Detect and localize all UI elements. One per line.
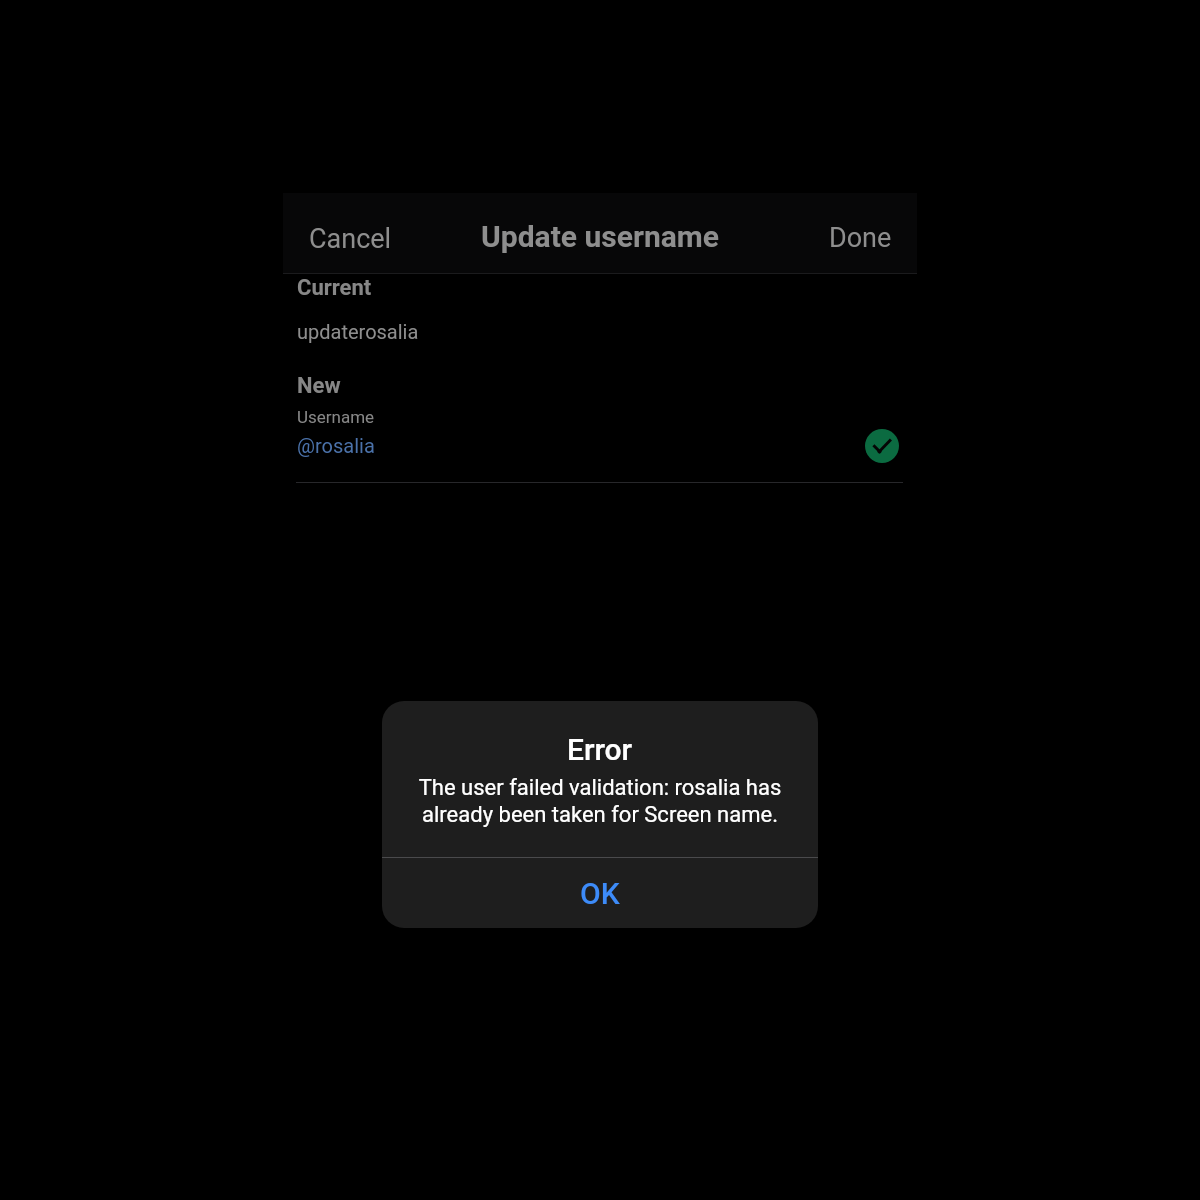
staticText: OK xyxy=(580,876,620,911)
button[interactable]: Done xyxy=(807,198,914,278)
staticText: @rosalia xyxy=(297,434,375,457)
staticText: updaterosalia xyxy=(297,320,419,343)
button[interactable]: Cancel xyxy=(297,199,404,279)
staticText: Done xyxy=(829,222,892,254)
staticText: New xyxy=(297,373,341,399)
button[interactable]: Username xyxy=(296,400,903,483)
button[interactable]: OK xyxy=(382,858,818,928)
other: Username available xyxy=(865,429,899,463)
staticText: Current xyxy=(297,275,372,301)
staticText: Error xyxy=(567,732,633,767)
staticText: Cancel xyxy=(309,223,392,255)
staticText: Update username xyxy=(481,219,719,254)
staticText: Username xyxy=(297,407,375,427)
staticText: The user failed validation: rosalia has … xyxy=(410,775,790,827)
